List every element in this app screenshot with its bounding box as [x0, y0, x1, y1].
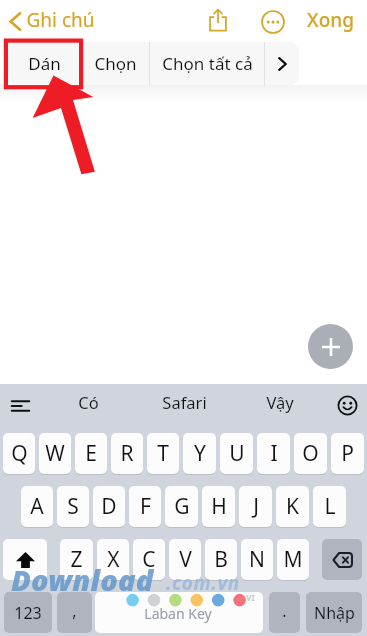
staticText: S — [67, 492, 79, 521]
button[interactable]: A — [21, 486, 53, 527]
staticText: A — [30, 492, 44, 521]
staticText: Laban Key — [144, 604, 212, 623]
button[interactable]: J — [239, 486, 272, 527]
button[interactable]: 123 — [4, 592, 52, 633]
button[interactable]: P — [331, 433, 364, 474]
staticText: E — [85, 439, 97, 468]
button[interactable]: C — [133, 539, 165, 580]
staticText: 123 — [14, 602, 42, 624]
button[interactable]: More — [258, 7, 288, 37]
staticText: Vậy — [266, 391, 294, 413]
button[interactable]: U — [220, 433, 253, 474]
staticText: M — [283, 545, 303, 574]
staticText: P — [341, 439, 354, 468]
button[interactable]: . — [269, 592, 300, 633]
staticText: Chọn tất cả — [162, 52, 253, 75]
button[interactable]: I — [257, 433, 290, 474]
button[interactable]: S — [57, 486, 89, 527]
button[interactable]: H — [202, 486, 235, 527]
button[interactable]: R — [111, 433, 143, 474]
staticText: Xong — [307, 7, 354, 33]
staticText: C — [142, 545, 156, 574]
button[interactable]: V — [169, 539, 201, 580]
button[interactable]: Share — [203, 5, 233, 35]
staticText: V — [179, 545, 192, 574]
button[interactable]: Vậy — [232, 384, 328, 428]
staticText: B — [214, 545, 228, 574]
button[interactable]: Shift — [3, 539, 47, 580]
staticText: Safari — [162, 391, 207, 413]
button[interactable]: Space — [95, 592, 263, 633]
staticText: .com.vn — [166, 570, 240, 596]
button[interactable]: G — [165, 486, 198, 527]
button[interactable]: Ghi chú — [5, 6, 101, 36]
button[interactable]: More options — [265, 42, 299, 85]
button[interactable]: Backspace — [322, 539, 362, 580]
staticText: K — [286, 492, 299, 521]
button[interactable]: B — [205, 539, 237, 580]
button[interactable]: Safari — [136, 384, 232, 428]
button[interactable]: Nhập — [306, 592, 362, 633]
staticText: N — [249, 545, 265, 574]
staticText: R — [120, 439, 134, 468]
button[interactable]: Add — [308, 324, 353, 369]
staticText: U — [229, 439, 245, 468]
button[interactable]: Chọn — [81, 42, 149, 85]
staticText: G — [174, 492, 190, 521]
staticText: L — [324, 492, 336, 521]
staticText: Y — [194, 439, 206, 468]
staticText: , — [72, 600, 77, 622]
staticText: Z — [70, 545, 83, 574]
button[interactable]: X — [97, 539, 129, 580]
button[interactable]: , — [57, 592, 92, 633]
button[interactable]: K — [276, 486, 309, 527]
staticText: Ghi chú — [26, 7, 95, 33]
button[interactable]: T — [147, 433, 179, 474]
staticText: X — [107, 545, 120, 574]
button[interactable]: L — [313, 486, 346, 527]
button[interactable]: Dán — [8, 42, 80, 85]
staticText: Download — [11, 560, 154, 599]
staticText: VI — [246, 592, 255, 603]
staticText: O — [302, 439, 319, 468]
button[interactable]: W — [39, 433, 71, 474]
button[interactable]: F — [129, 486, 161, 527]
staticText: Dán — [28, 52, 61, 75]
button[interactable]: E — [75, 433, 107, 474]
button[interactable]: O — [294, 433, 327, 474]
button[interactable]: D — [93, 486, 125, 527]
button[interactable]: Keyboard menu — [2, 388, 38, 424]
button[interactable]: Z — [60, 539, 93, 580]
staticText: T — [157, 439, 169, 468]
button[interactable]: Xong — [303, 6, 358, 34]
staticText: J — [253, 492, 259, 521]
button[interactable]: M — [277, 539, 309, 580]
staticText: I — [270, 439, 278, 468]
button[interactable]: Emoji — [329, 387, 365, 423]
staticText: Nhập — [314, 602, 355, 624]
staticText: . — [282, 600, 287, 622]
staticText: Chọn — [94, 52, 137, 75]
button[interactable]: Q — [3, 433, 35, 474]
button[interactable]: N — [241, 539, 273, 580]
button[interactable]: Có — [40, 384, 136, 428]
staticText: D — [101, 492, 117, 521]
button[interactable]: Y — [183, 433, 216, 474]
staticText: H — [211, 492, 227, 521]
staticText: Có — [78, 391, 99, 413]
button[interactable]: Chọn tất cả — [150, 42, 264, 85]
staticText: F — [140, 492, 151, 521]
staticText: Q — [11, 439, 28, 468]
staticText: W — [45, 439, 65, 468]
